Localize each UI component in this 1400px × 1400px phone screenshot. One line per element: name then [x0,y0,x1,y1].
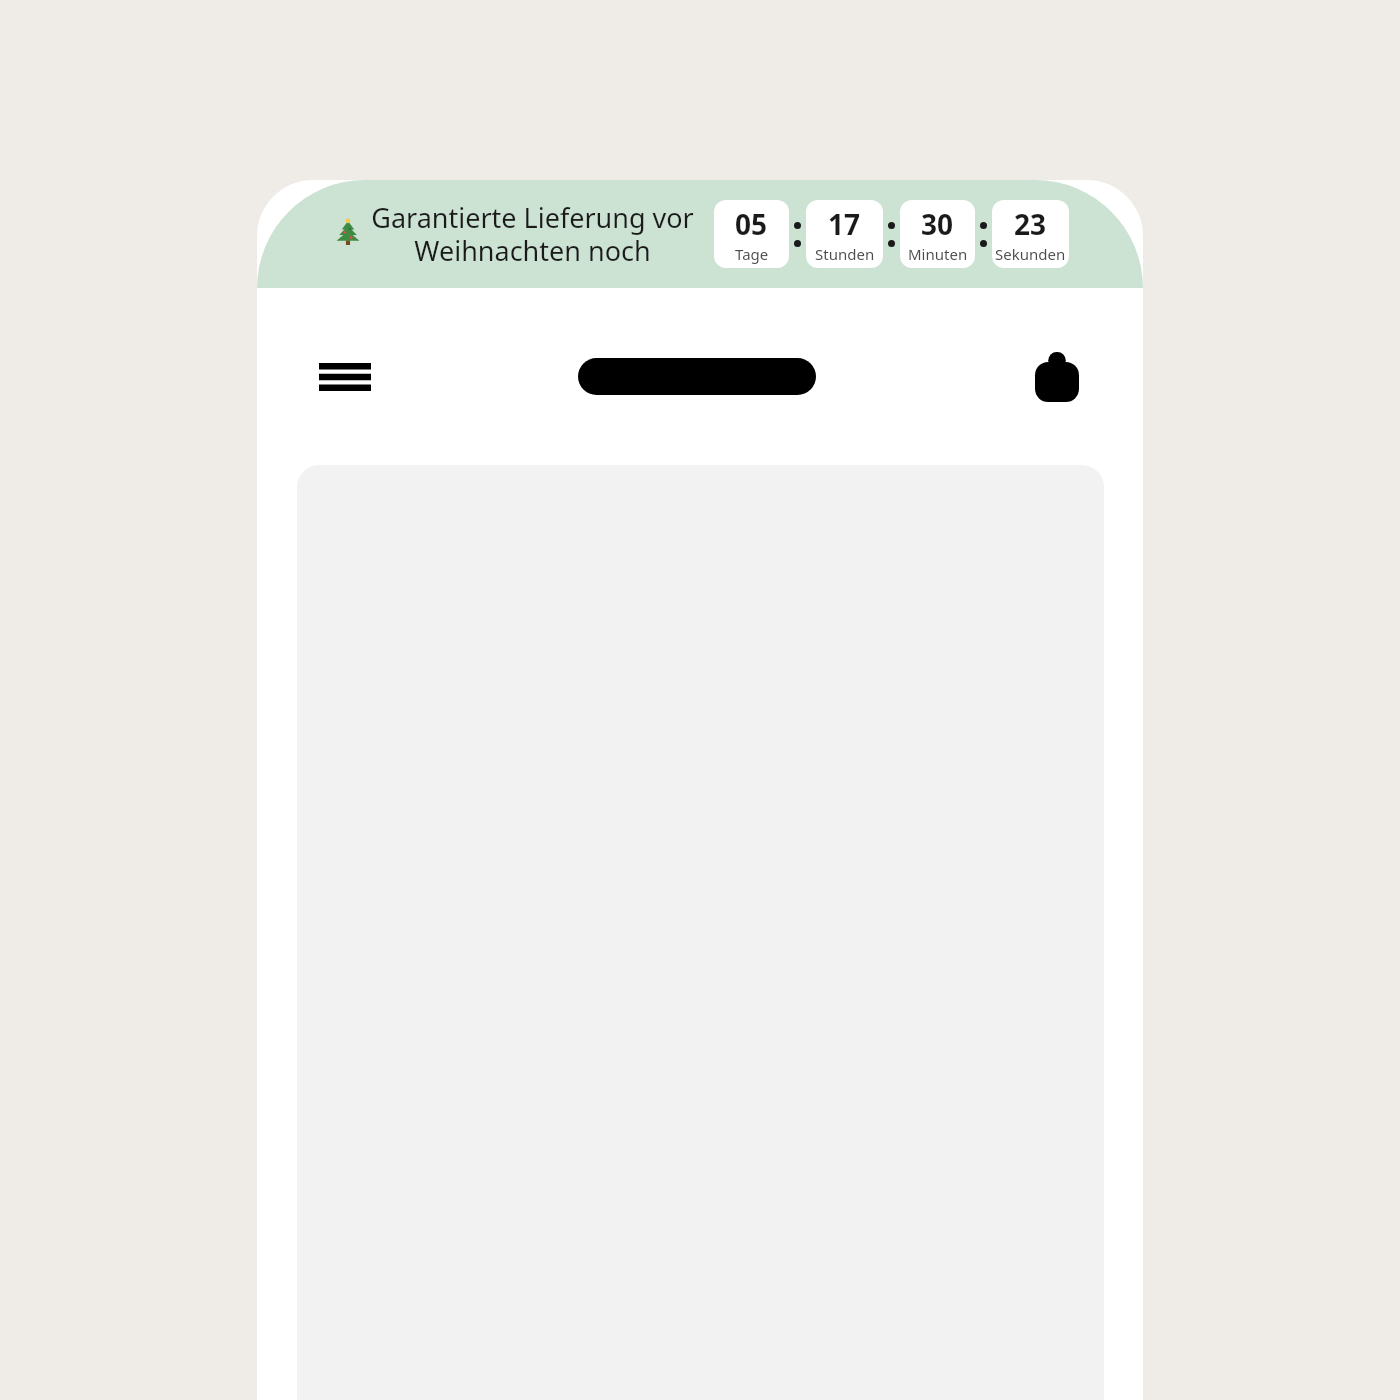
button[interactable]: Menu [313,349,377,405]
staticText: 17 [828,205,861,243]
staticText: Tage [735,244,769,264]
staticText: Minuten [908,244,968,264]
staticText: 05 [735,205,768,243]
staticText: Stunden [815,244,875,264]
button[interactable]: 23 [992,200,1069,268]
staticText: 30 [921,205,954,243]
staticText: 23 [1014,205,1047,243]
button[interactable]: Home [578,358,816,395]
button[interactable]: 17 [806,200,883,268]
staticText: Garantierte Lieferung vor Weihnachten no… [371,199,694,269]
button[interactable]: 05 [714,200,789,268]
button[interactable]: 30 [900,200,975,268]
staticText: Sekunden [995,244,1066,264]
button[interactable]: Cart [1027,347,1087,407]
